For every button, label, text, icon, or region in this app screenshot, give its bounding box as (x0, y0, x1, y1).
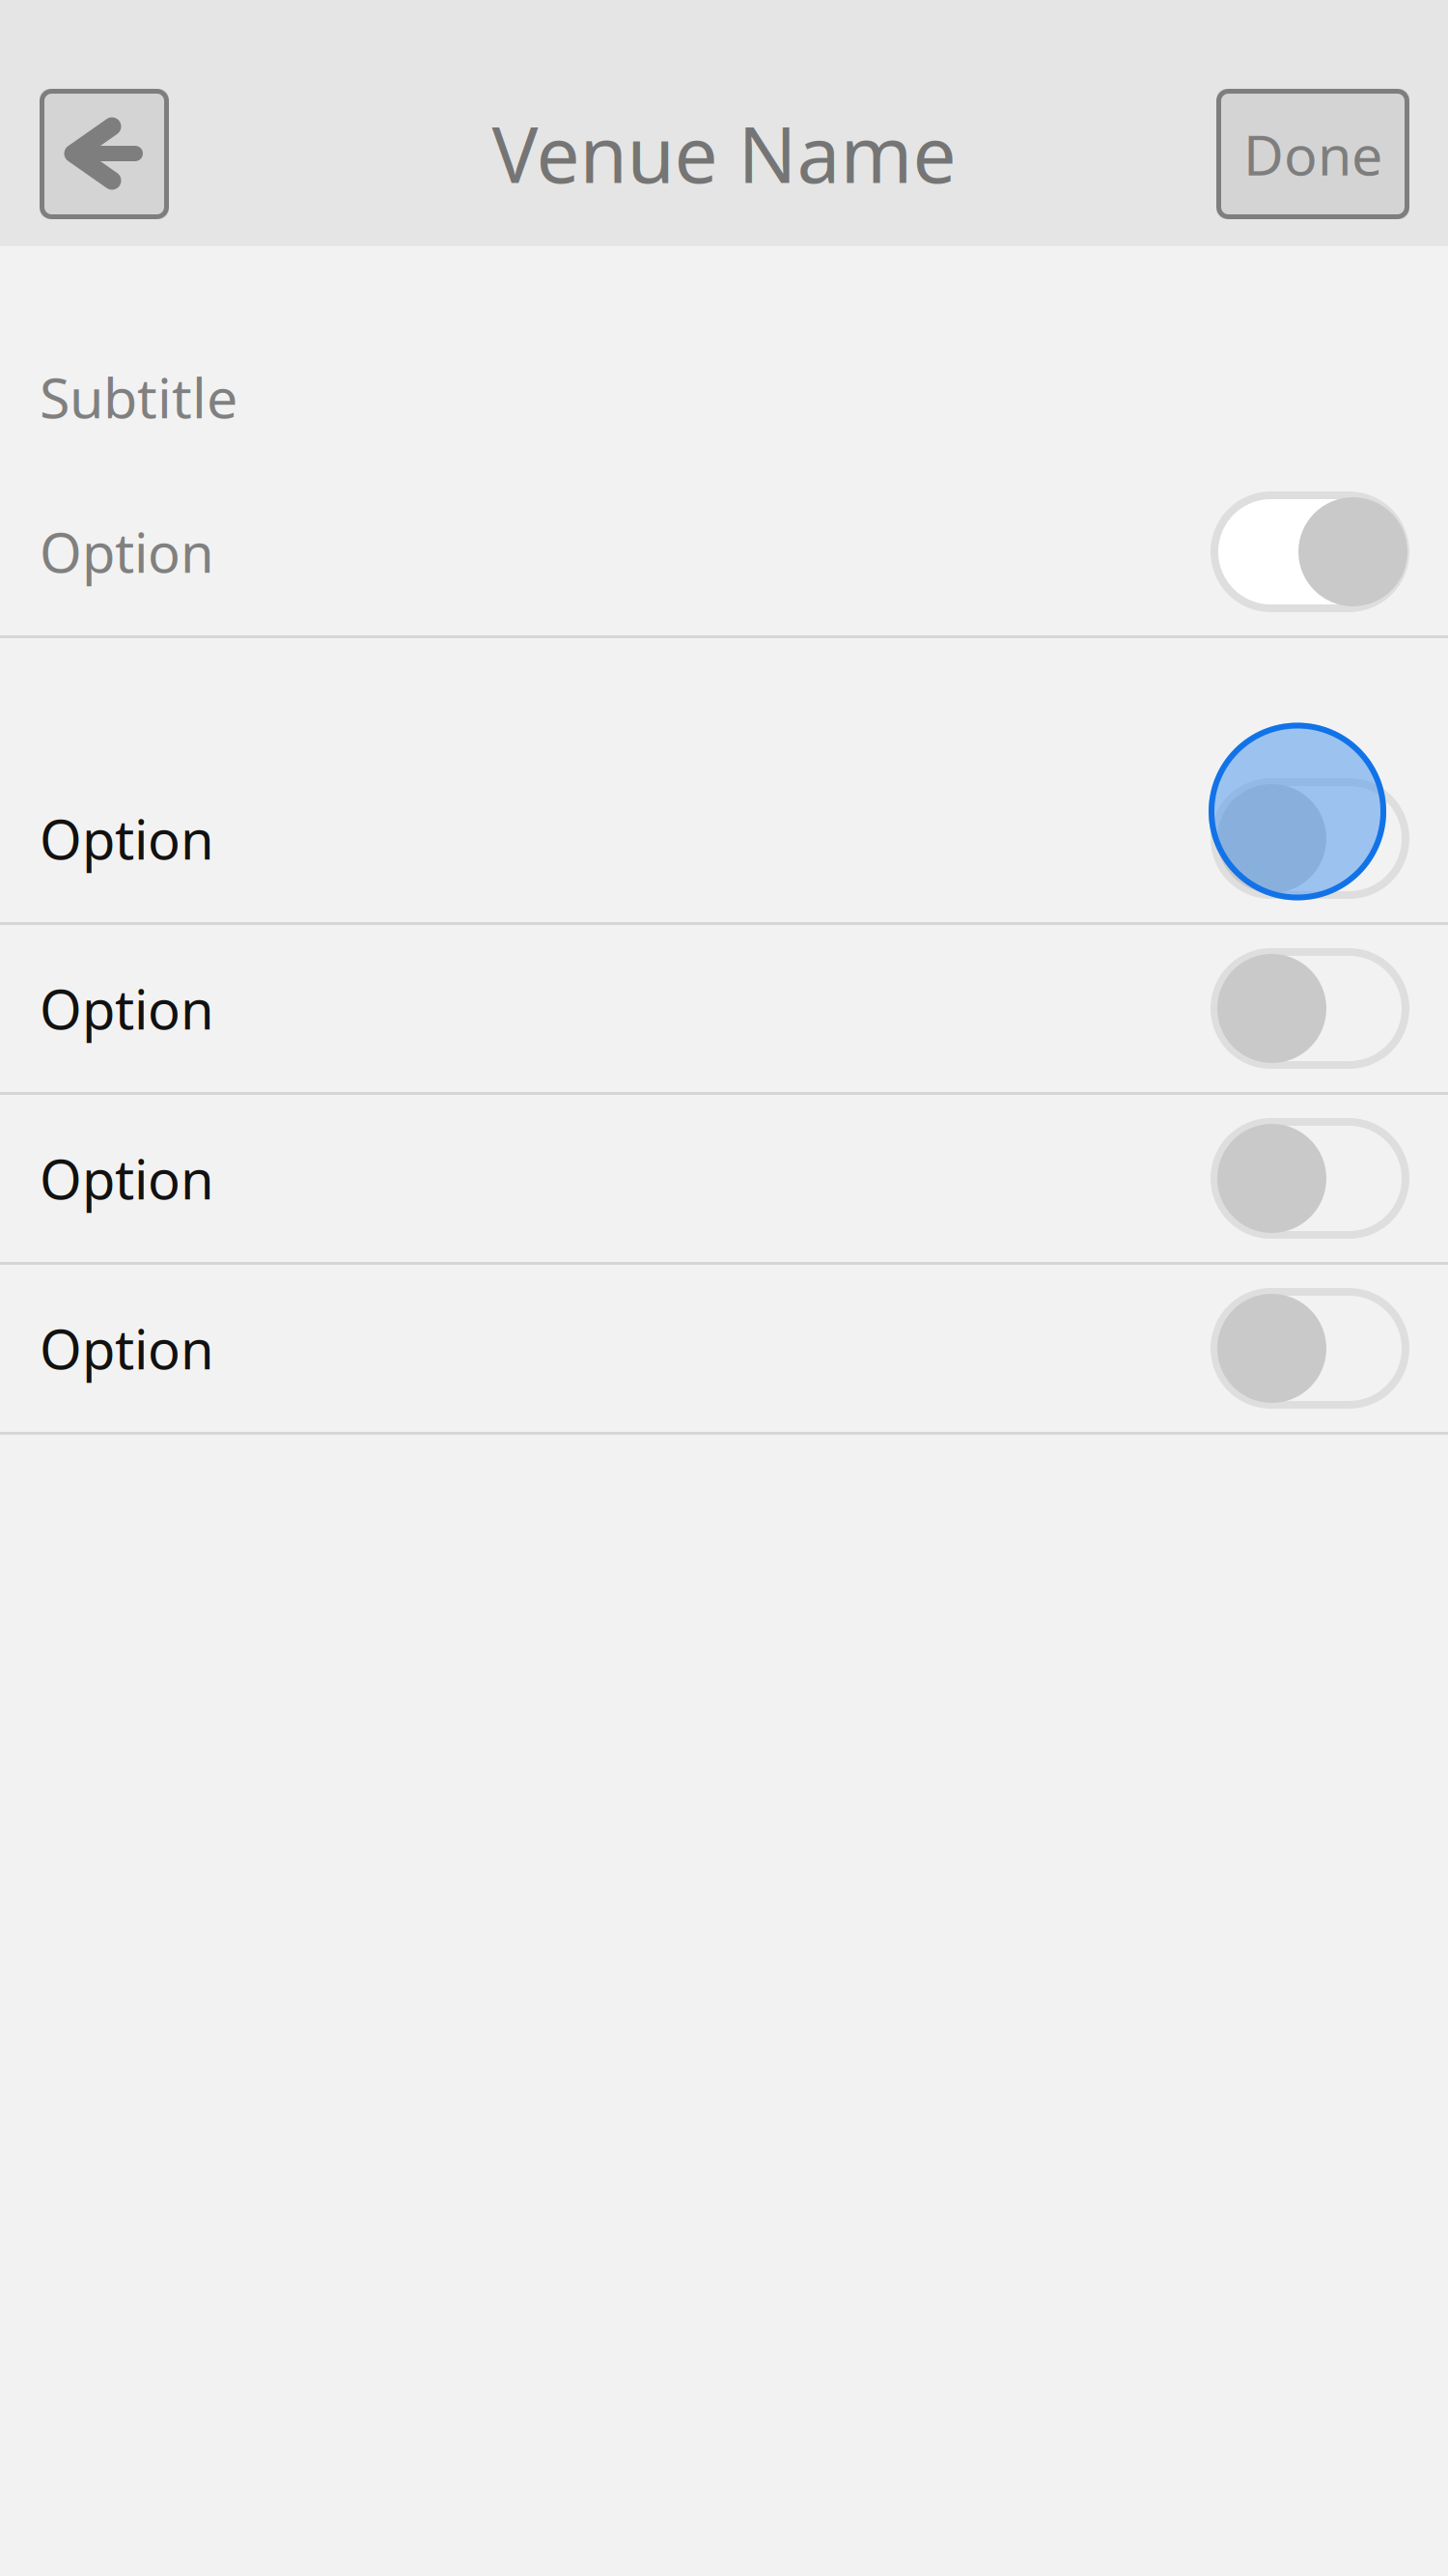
staticText: Option (40, 803, 214, 874)
button[interactable]: Option (0, 1095, 1448, 1262)
button[interactable]: Option (0, 468, 1448, 635)
staticText: Option (40, 973, 214, 1044)
staticText: Option (40, 1312, 214, 1384)
button[interactable]: Back (40, 89, 169, 219)
staticText: Option (40, 1142, 214, 1214)
staticText: Venue Name (492, 102, 956, 204)
button[interactable]: Option (0, 755, 1448, 922)
staticText: Option (40, 516, 214, 588)
button[interactable]: Option (0, 1265, 1448, 1432)
button[interactable]: Done (1216, 89, 1409, 219)
staticText: Subtitle (40, 360, 237, 434)
staticText: Done (1243, 117, 1382, 191)
button[interactable]: Option (0, 925, 1448, 1092)
